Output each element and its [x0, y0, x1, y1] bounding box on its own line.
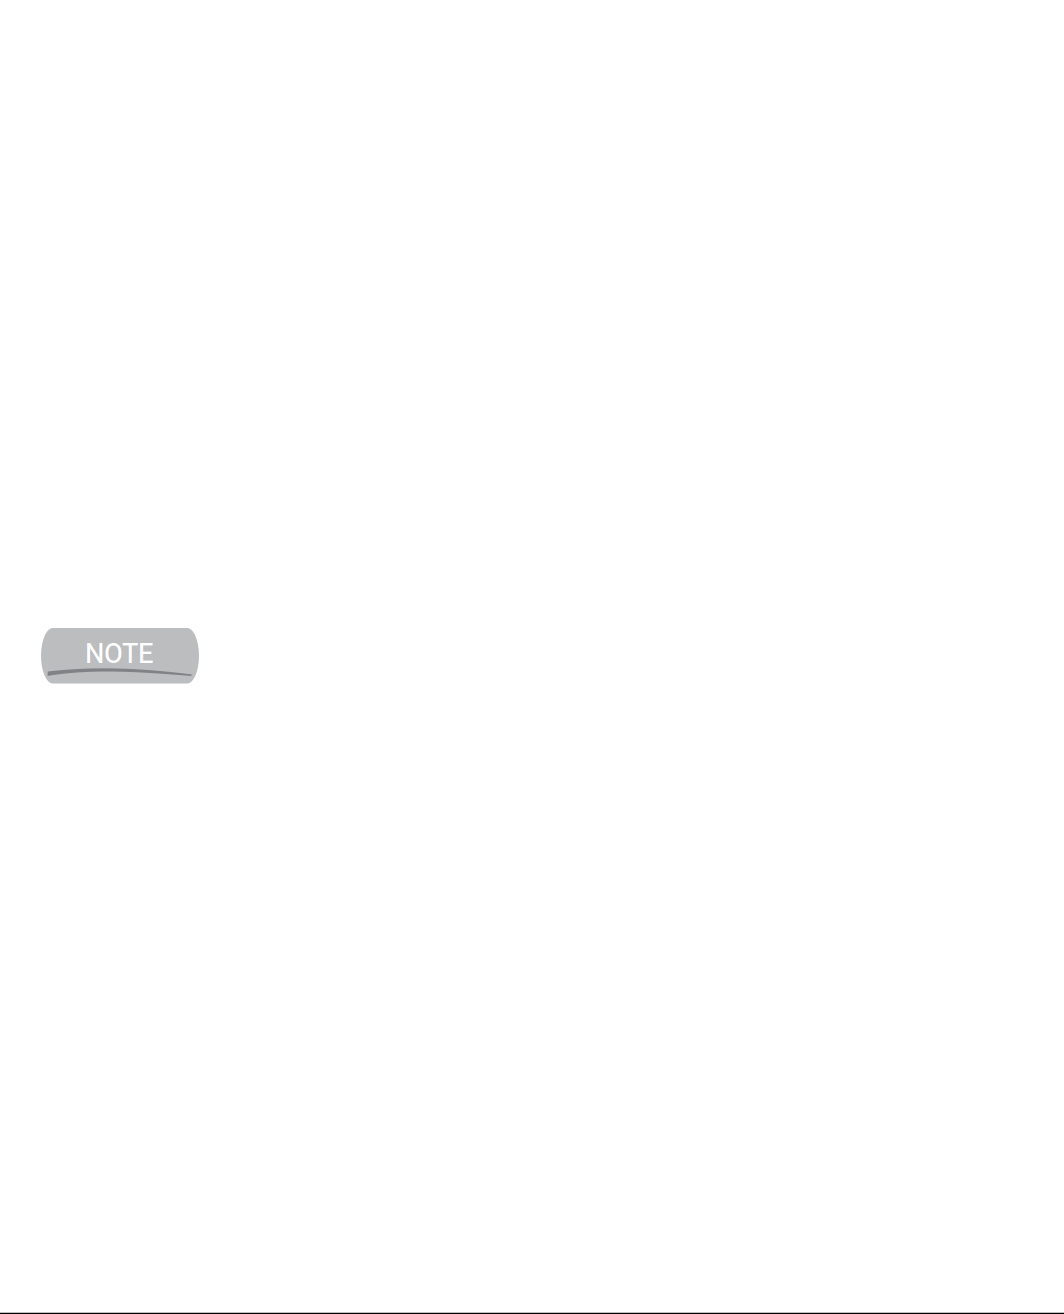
staticText: NOTE [85, 638, 153, 670]
button[interactable]: NOTE [41, 628, 199, 683]
